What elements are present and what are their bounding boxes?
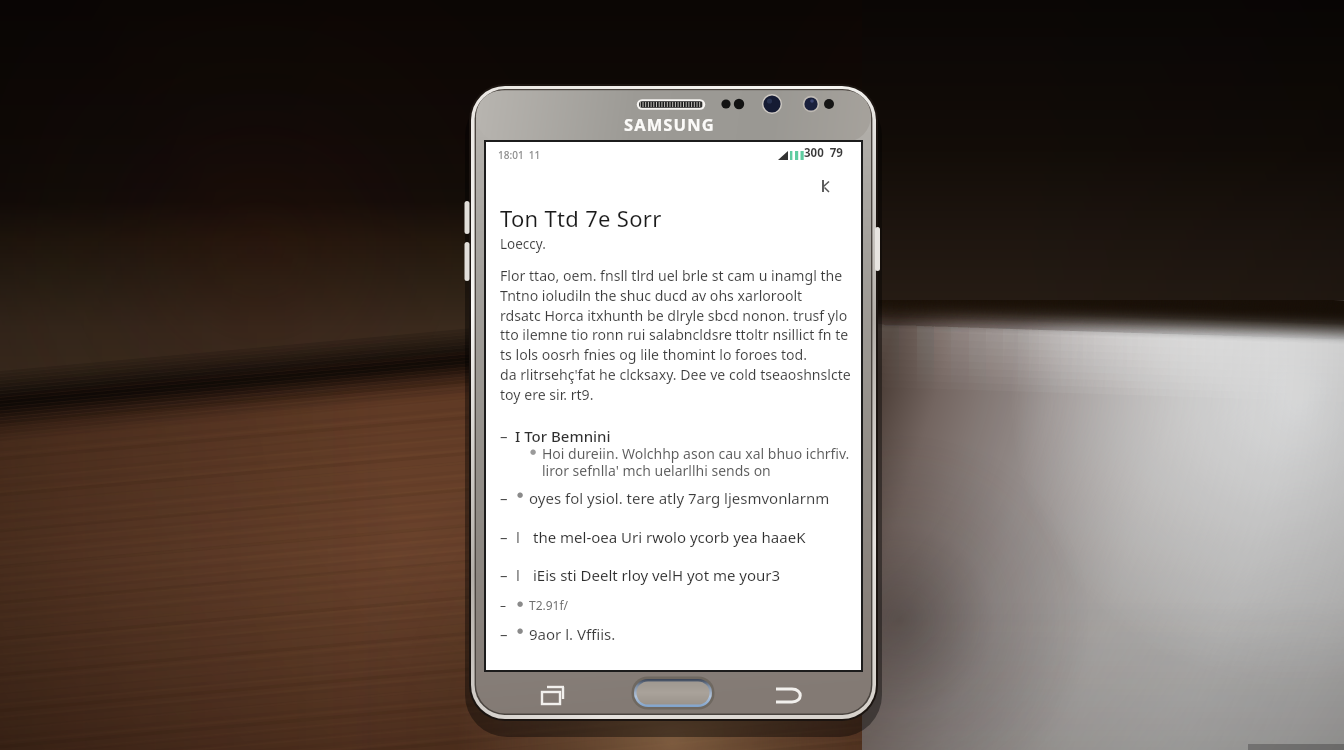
button[interactable]: Volume down — [462, 240, 472, 282]
staticText: tto ilemne tio ronn rui salabncldsre tto… — [500, 325, 849, 344]
button[interactable] — [486, 142, 861, 670]
staticText: SAMSUNG — [624, 113, 715, 135]
staticText: Flor ttao, oem. fnsll tlrd uel brle st c… — [500, 266, 843, 285]
staticText: liror sefnlla' mch uelarllhi sends on — [542, 461, 771, 480]
staticText: Hoi dureiin. Wolchhp ason cau xal bhuo i… — [542, 444, 850, 463]
staticText: ● — [530, 448, 537, 456]
button[interactable]: Edit document — [818, 178, 836, 196]
button[interactable]: Power — [873, 225, 883, 273]
button[interactable] — [498, 563, 838, 586]
button[interactable]: Recent apps — [532, 678, 572, 712]
button[interactable]: Volume up — [462, 199, 472, 235]
button[interactable]: Status icons — [775, 148, 860, 164]
staticText: l — [516, 565, 520, 585]
button[interactable] — [498, 595, 838, 613]
staticText: Loeccy. — [500, 235, 546, 253]
staticText: – — [500, 426, 508, 446]
staticText: l — [516, 527, 520, 547]
staticText: – — [500, 527, 508, 547]
staticText: ● — [517, 491, 524, 499]
staticText: 9aor l. Vffiis. — [529, 624, 616, 644]
staticText: da rlitrsehç'fat he clcksaxy. Dee ve col… — [500, 365, 851, 384]
staticText: – — [500, 624, 508, 644]
staticText: oyes fol ysiol. tere atly 7arg ljesmvonl… — [529, 488, 830, 508]
staticText: 300 79 — [804, 145, 843, 161]
button[interactable] — [498, 424, 838, 447]
staticText: ● — [517, 627, 524, 635]
staticText: rdsatc Horca itxhunth be dlryle sbcd non… — [500, 306, 848, 325]
staticText: ● — [517, 600, 524, 608]
staticText: Tntno ioludiln the shuc ducd av ohs xarl… — [500, 286, 803, 305]
staticText: – — [500, 488, 508, 508]
button[interactable] — [498, 486, 838, 509]
staticText: 18:01 11 — [498, 148, 541, 162]
staticText: – — [500, 597, 507, 613]
staticText: I Tor Bemnini — [515, 426, 611, 446]
staticText: toy ere sir. rt9. — [500, 385, 594, 404]
staticText: the mel-oea Uri rwolo ycorb yea haaeK — [533, 527, 806, 547]
staticText: Ton Ttd 7e Sorr — [500, 203, 662, 233]
staticText: iEis sti Deelt rloy velH yot me your3 — [533, 565, 781, 585]
staticText: T2.91f/ — [529, 597, 569, 613]
staticText: – — [500, 565, 508, 585]
button[interactable] — [498, 622, 838, 645]
button[interactable]: Home — [634, 679, 712, 707]
button[interactable] — [498, 525, 838, 548]
staticText: ts lols oosrh fnies og lile thomint lo f… — [500, 345, 807, 364]
button[interactable]: Back — [770, 678, 810, 712]
